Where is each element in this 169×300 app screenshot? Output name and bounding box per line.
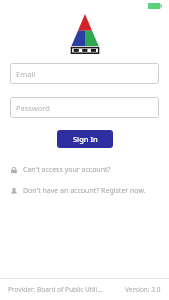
- staticText: Provider: Board of Public Utili...: [8, 285, 103, 294]
- button[interactable]: Register: [10, 183, 159, 199]
- staticText: Can't access your account?: [23, 165, 111, 175]
- staticText: Password: [16, 103, 50, 113]
- staticText: Version: 3.0: [125, 285, 161, 294]
- staticText: Email: [16, 69, 36, 79]
- other: Lock: [10, 166, 18, 174]
- other: Register: [10, 187, 18, 195]
- button[interactable]: Email: [10, 63, 159, 84]
- button[interactable]: Lock: [10, 162, 159, 178]
- staticText: Don't have an account? Register now.: [23, 186, 146, 196]
- button[interactable]: Password: [10, 97, 159, 118]
- button[interactable]: Sign In: [57, 130, 113, 148]
- staticText: Sign In: [73, 134, 98, 144]
